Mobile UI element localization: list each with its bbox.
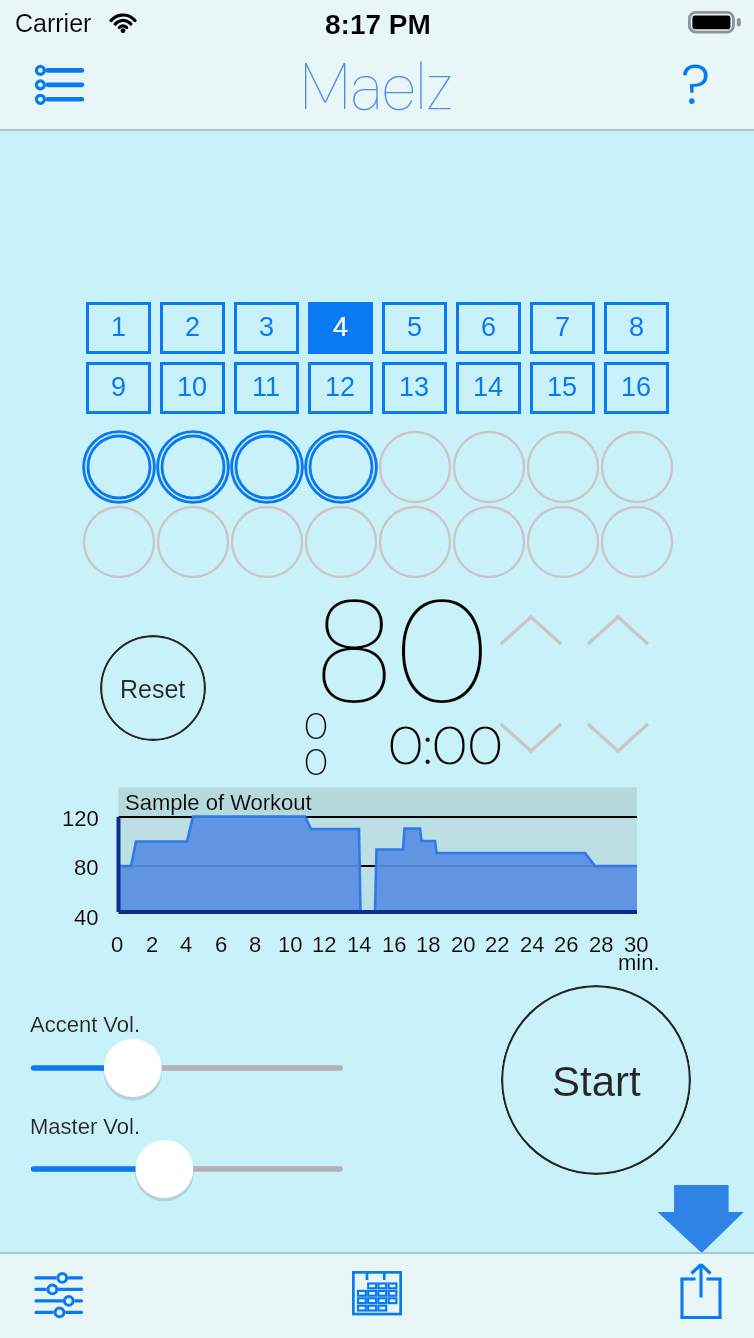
staticText: 14 bbox=[473, 372, 504, 402]
staticText: 2 bbox=[146, 932, 159, 957]
staticText: 10 bbox=[278, 932, 303, 957]
staticText: 8 bbox=[629, 312, 645, 342]
staticText: Sample of Workout bbox=[125, 790, 312, 815]
other: Export bbox=[655, 1185, 749, 1253]
button[interactable] bbox=[599, 504, 675, 580]
staticText: 120 bbox=[62, 806, 99, 828]
staticText: 9 bbox=[111, 372, 127, 402]
staticText: Reset bbox=[120, 675, 186, 703]
staticText: Maelz bbox=[300, 45, 454, 127]
button[interactable] bbox=[377, 504, 453, 580]
staticText: 6 bbox=[215, 932, 228, 957]
staticText: 16 bbox=[382, 932, 407, 957]
staticText: 5 bbox=[407, 312, 423, 342]
button[interactable]: 15 bbox=[530, 362, 595, 414]
staticText: 14 bbox=[347, 932, 372, 957]
button[interactable]: List bbox=[12, 50, 94, 116]
staticText: 12 bbox=[312, 932, 337, 957]
staticText: 8 bbox=[249, 932, 262, 957]
button[interactable] bbox=[81, 429, 157, 505]
button[interactable] bbox=[599, 429, 675, 505]
staticText: 6 bbox=[481, 312, 497, 342]
staticText: min. bbox=[618, 950, 660, 975]
button[interactable] bbox=[377, 429, 453, 505]
button[interactable]: 7 bbox=[530, 302, 595, 354]
button[interactable]: Volume slider bbox=[4, 1141, 370, 1197]
staticText: 26 bbox=[554, 932, 579, 957]
button[interactable]: 13 bbox=[382, 362, 447, 414]
staticText: 30 bbox=[624, 932, 649, 957]
button[interactable] bbox=[155, 429, 231, 505]
button[interactable] bbox=[303, 504, 379, 580]
button[interactable] bbox=[451, 429, 527, 505]
button[interactable]: 6 bbox=[456, 302, 521, 354]
staticText: 80 bbox=[74, 855, 99, 877]
button[interactable] bbox=[525, 504, 601, 580]
staticText: 13 bbox=[399, 372, 430, 402]
button[interactable]: Calendar bbox=[324, 1256, 430, 1336]
button[interactable]: Reset bbox=[100, 635, 206, 741]
staticText: 28 bbox=[589, 932, 614, 957]
staticText: 24 bbox=[520, 932, 545, 957]
button[interactable]: Help bbox=[662, 50, 730, 118]
staticText: 10 bbox=[177, 372, 208, 402]
button[interactable]: Settings bbox=[6, 1256, 112, 1336]
button[interactable]: 11 bbox=[234, 362, 299, 414]
staticText: Master Vol. bbox=[30, 1114, 141, 1139]
button[interactable] bbox=[303, 429, 379, 505]
button[interactable]: 5 bbox=[382, 302, 447, 354]
button[interactable] bbox=[229, 504, 305, 580]
button[interactable]: Decrease tempo bbox=[496, 714, 566, 762]
staticText: 80 bbox=[313, 558, 489, 718]
staticText: 40 bbox=[74, 905, 99, 927]
button[interactable]: 10 bbox=[160, 362, 225, 414]
staticText: Accent Vol. bbox=[30, 1012, 141, 1037]
staticText: 4 bbox=[333, 312, 349, 342]
staticText: 16 bbox=[621, 372, 652, 402]
staticText: 12 bbox=[325, 372, 356, 402]
staticText: Carrier bbox=[15, 9, 92, 37]
staticText: 20 bbox=[451, 932, 476, 957]
staticText: 2 bbox=[185, 312, 201, 342]
button[interactable]: 14 bbox=[456, 362, 521, 414]
button[interactable] bbox=[81, 504, 157, 580]
button[interactable]: 2 bbox=[160, 302, 225, 354]
staticText: 0:00 bbox=[388, 711, 503, 780]
staticText: 1 bbox=[111, 312, 127, 342]
button[interactable]: 8 bbox=[604, 302, 669, 354]
staticText: 7 bbox=[555, 312, 571, 342]
button[interactable] bbox=[525, 429, 601, 505]
button[interactable] bbox=[155, 504, 231, 580]
staticText: 22 bbox=[485, 932, 510, 957]
button[interactable]: 1 bbox=[86, 302, 151, 354]
staticText: 15 bbox=[547, 372, 578, 402]
staticText: 3 bbox=[259, 312, 275, 342]
staticText: 4 bbox=[180, 932, 193, 957]
button[interactable]: 16 bbox=[604, 362, 669, 414]
button[interactable]: Increase tempo bbox=[496, 606, 566, 654]
button[interactable]: 4 bbox=[308, 302, 373, 354]
staticText: 8:17 PM bbox=[325, 9, 431, 40]
staticText: 18 bbox=[416, 932, 441, 957]
button[interactable]: Volume slider bbox=[4, 1040, 370, 1096]
button[interactable]: 12 bbox=[308, 362, 373, 414]
button[interactable]: Decrease beats bbox=[583, 714, 653, 762]
button[interactable]: Share bbox=[648, 1256, 754, 1336]
staticText: Start bbox=[552, 1058, 641, 1105]
button[interactable] bbox=[451, 504, 527, 580]
button[interactable]: 3 bbox=[234, 302, 299, 354]
button[interactable] bbox=[229, 429, 305, 505]
staticText: 0 bbox=[111, 932, 124, 957]
staticText: 0 0 bbox=[304, 703, 328, 786]
button[interactable]: Increase beats bbox=[583, 606, 653, 654]
button[interactable]: Start bbox=[501, 985, 691, 1175]
staticText: 11 bbox=[252, 372, 281, 402]
button[interactable]: 9 bbox=[86, 362, 151, 414]
staticText: ? bbox=[681, 48, 711, 116]
